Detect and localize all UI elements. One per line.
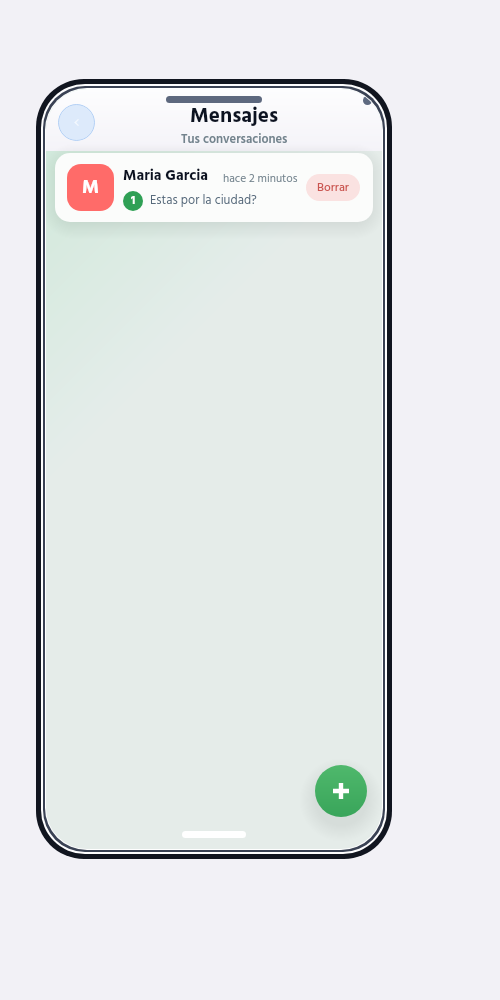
staticText: Estas por la ciudad? bbox=[150, 191, 257, 211]
staticText: hace 2 minutos bbox=[223, 170, 298, 188]
button[interactable]: Borrar bbox=[306, 174, 360, 201]
staticText: Maria Garcia bbox=[123, 164, 209, 188]
staticText: Mensajes bbox=[190, 100, 279, 134]
staticText: 1 bbox=[131, 192, 136, 210]
staticText: M bbox=[82, 173, 99, 203]
button[interactable]: M bbox=[55, 153, 373, 222]
button[interactable]: New message bbox=[315, 765, 367, 817]
staticText: Tus conversaciones bbox=[181, 130, 288, 150]
button[interactable]: Back bbox=[58, 104, 95, 141]
staticText: Borrar bbox=[317, 178, 349, 197]
